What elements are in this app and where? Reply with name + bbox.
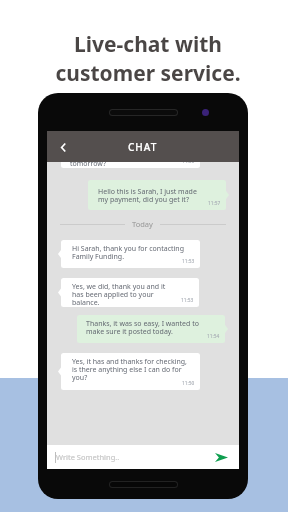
button[interactable]: Hi Sarah, thank you for contacting Famil… [58, 240, 200, 268]
staticText: 11:57 [208, 200, 221, 207]
staticText: Will the money be there by tomorrow? [70, 151, 158, 168]
button[interactable]: Will the money be there by tomorrow? [58, 146, 200, 168]
staticText: Yes, we did, thank you and it has been a… [72, 282, 166, 307]
button[interactable]: Hello this is Sarah, I just made my paym… [88, 180, 229, 210]
staticText: Hi Sarah, thank you for contacting Famil… [72, 244, 184, 261]
staticText: Hello this is Sarah, I just made my paym… [98, 187, 197, 204]
staticText: Write Something.. [56, 452, 120, 462]
staticText: Thanks, it was so easy, I wanted to make… [86, 319, 199, 336]
button[interactable]: Back [52, 136, 74, 158]
button[interactable]: Send [212, 448, 230, 466]
staticText: Yes, it has and thanks for checking, is … [72, 357, 187, 382]
staticText: 11:50 [182, 158, 195, 165]
button[interactable]: Yes, it has and thanks for checking, is … [58, 353, 200, 390]
button[interactable]: Thanks, it was so easy, I wanted to make… [77, 315, 228, 343]
staticText: 11:53 [181, 297, 194, 304]
button[interactable]: Yes, we did, thank you and it has been a… [58, 278, 199, 307]
staticText: customer service. [55, 59, 241, 88]
staticText: 11:54 [207, 333, 220, 340]
staticText: Live-chat with [74, 30, 222, 59]
staticText: 11:50 [182, 380, 195, 387]
staticText: 11:53 [182, 258, 195, 265]
staticText: CHAT [128, 140, 158, 154]
staticText: Today [132, 219, 153, 229]
